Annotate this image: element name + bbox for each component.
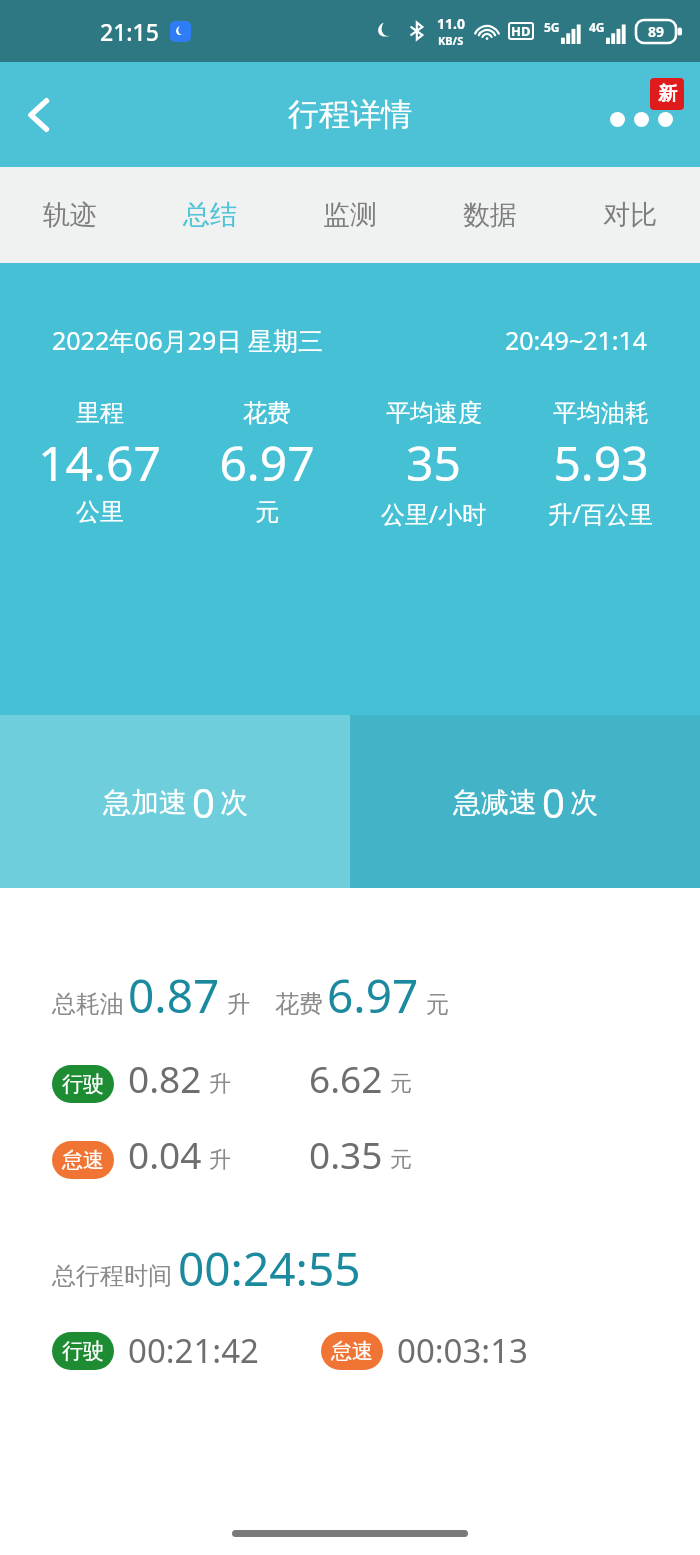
staticText: 89: [648, 22, 665, 41]
staticText: 平均油耗: [553, 398, 649, 428]
staticText: 00:03:13: [397, 1328, 528, 1373]
staticText: 11.0: [437, 14, 465, 33]
staticText: 总行程时间: [52, 1261, 172, 1291]
staticText: 14.67: [38, 430, 161, 495]
staticText: 急加速: [103, 785, 187, 820]
staticText: 0.82: [128, 1053, 202, 1103]
staticText: 元: [390, 1070, 412, 1098]
staticText: KB/S: [438, 33, 464, 48]
staticText: 00:21:42: [128, 1328, 259, 1373]
staticText: 升: [209, 1070, 231, 1098]
staticText: 总耗油: [52, 989, 124, 1019]
staticText: 6.97: [327, 964, 419, 1027]
staticText: 升: [209, 1146, 231, 1174]
staticText: 元: [390, 1146, 412, 1174]
staticText: 行程详情: [288, 95, 412, 134]
button[interactable]: 行驶: [52, 1053, 412, 1103]
staticText: 4G: [589, 19, 605, 35]
staticText: HD: [511, 22, 531, 40]
staticText: 怠速: [331, 1338, 373, 1364]
staticText: 元: [426, 990, 449, 1019]
staticText: 次: [570, 785, 598, 820]
staticText: 急减速: [453, 785, 537, 820]
staticText: 平均速度: [386, 398, 482, 428]
staticText: 新: [658, 82, 677, 106]
staticText: 5G: [544, 19, 560, 35]
button[interactable]: 总结: [140, 167, 280, 263]
staticText: 2022年06月29日 星期三: [52, 323, 323, 357]
staticText: 公里: [76, 497, 124, 527]
staticText: 对比: [603, 198, 657, 232]
button[interactable]: 急加速: [0, 715, 350, 888]
staticText: 0: [192, 775, 215, 829]
button[interactable]: 轨迹: [0, 167, 140, 263]
staticText: 升: [227, 990, 250, 1019]
staticText: 6.62: [309, 1053, 383, 1103]
button[interactable]: 行驶: [52, 1328, 528, 1373]
staticText: 花费: [275, 989, 323, 1019]
staticText: 公里/小时: [381, 497, 486, 530]
button[interactable]: 里程: [16, 398, 183, 527]
button[interactable]: 平均速度: [350, 398, 517, 530]
staticText: 花费: [243, 398, 291, 428]
staticText: 0.35: [309, 1129, 383, 1179]
button[interactable]: More options: [598, 76, 684, 154]
button[interactable]: 花费: [183, 398, 350, 527]
staticText: 0.87: [128, 964, 220, 1027]
staticText: 升/百公里: [548, 497, 653, 530]
staticText: 里程: [76, 398, 124, 428]
staticText: 21:15: [100, 16, 159, 47]
staticText: 20:49~21:14: [505, 323, 648, 357]
staticText: 怠速: [62, 1147, 104, 1173]
staticText: 0.04: [128, 1129, 202, 1179]
staticText: 6.97: [219, 430, 315, 495]
staticText: 数据: [463, 198, 517, 232]
staticText: 35: [406, 430, 461, 495]
staticText: 轨迹: [43, 198, 97, 232]
button[interactable]: 急减速: [350, 715, 700, 888]
staticText: 总结: [183, 198, 237, 232]
staticText: 00:24:55: [178, 1237, 361, 1300]
staticText: 监测: [323, 198, 377, 232]
staticText: 0: [542, 775, 565, 829]
button[interactable]: 怠速: [52, 1129, 412, 1179]
staticText: 5.93: [553, 430, 649, 495]
button[interactable]: 监测: [280, 167, 420, 263]
staticText: 元: [255, 497, 279, 527]
staticText: 次: [220, 785, 248, 820]
staticText: 行驶: [62, 1071, 104, 1097]
staticText: 行驶: [62, 1338, 104, 1364]
button[interactable]: 平均油耗: [517, 398, 684, 530]
button[interactable]: Back: [0, 76, 78, 154]
button[interactable]: 数据: [420, 167, 560, 263]
button[interactable]: 对比: [560, 167, 700, 263]
